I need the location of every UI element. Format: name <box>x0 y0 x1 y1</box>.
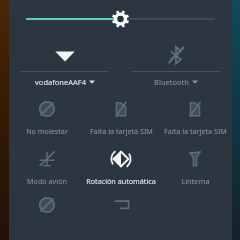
staticText: Linterna <box>181 176 210 186</box>
button[interactable]: Modo avión <box>9 146 84 186</box>
staticText: Falta la tarjeta SIM <box>90 126 153 136</box>
button[interactable]: Falta la tarjeta SIM <box>158 96 232 136</box>
button[interactable]: Rotación automática <box>84 146 158 186</box>
button[interactable]: No molestar <box>9 96 84 136</box>
staticText: Bluetooth <box>154 77 189 87</box>
staticText: Modo avión <box>27 176 67 186</box>
button[interactable]: vodafoneAAF4 <box>9 42 120 87</box>
staticText: Falta la tarjeta SIM <box>164 126 227 136</box>
staticText: Rotación automática <box>86 176 156 186</box>
button[interactable]: Linterna <box>158 146 232 186</box>
button[interactable]: Brightness <box>9 8 232 30</box>
button[interactable]: Bluetooth <box>120 42 232 87</box>
staticText: No molestar <box>26 126 68 136</box>
button[interactable]: Falta la tarjeta SIM <box>84 96 158 136</box>
staticText: vodafoneAAF4 <box>35 77 86 87</box>
